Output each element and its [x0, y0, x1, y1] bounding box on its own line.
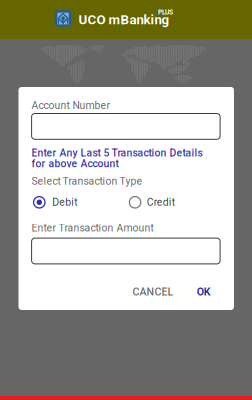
staticText: Enter Transaction Amount — [32, 222, 154, 234]
staticText: CANCEL — [132, 285, 173, 298]
staticText: for above Account — [32, 157, 119, 170]
staticText: Credit — [147, 196, 175, 208]
button[interactable]: Debit — [34, 194, 128, 210]
staticText: Enter Any Last 5 Transaction Details — [32, 147, 203, 159]
staticText: PLUS — [158, 8, 173, 16]
button[interactable]: Credit — [129, 194, 223, 210]
staticText: OK — [197, 285, 211, 298]
staticText: UCO mBanking — [79, 12, 170, 28]
button[interactable]: CANCEL — [127, 281, 179, 303]
button[interactable]: OK — [191, 281, 217, 303]
staticText: Select Transaction Type — [32, 175, 143, 187]
staticText: Account Number — [32, 99, 111, 111]
staticText: Debit — [52, 196, 77, 208]
